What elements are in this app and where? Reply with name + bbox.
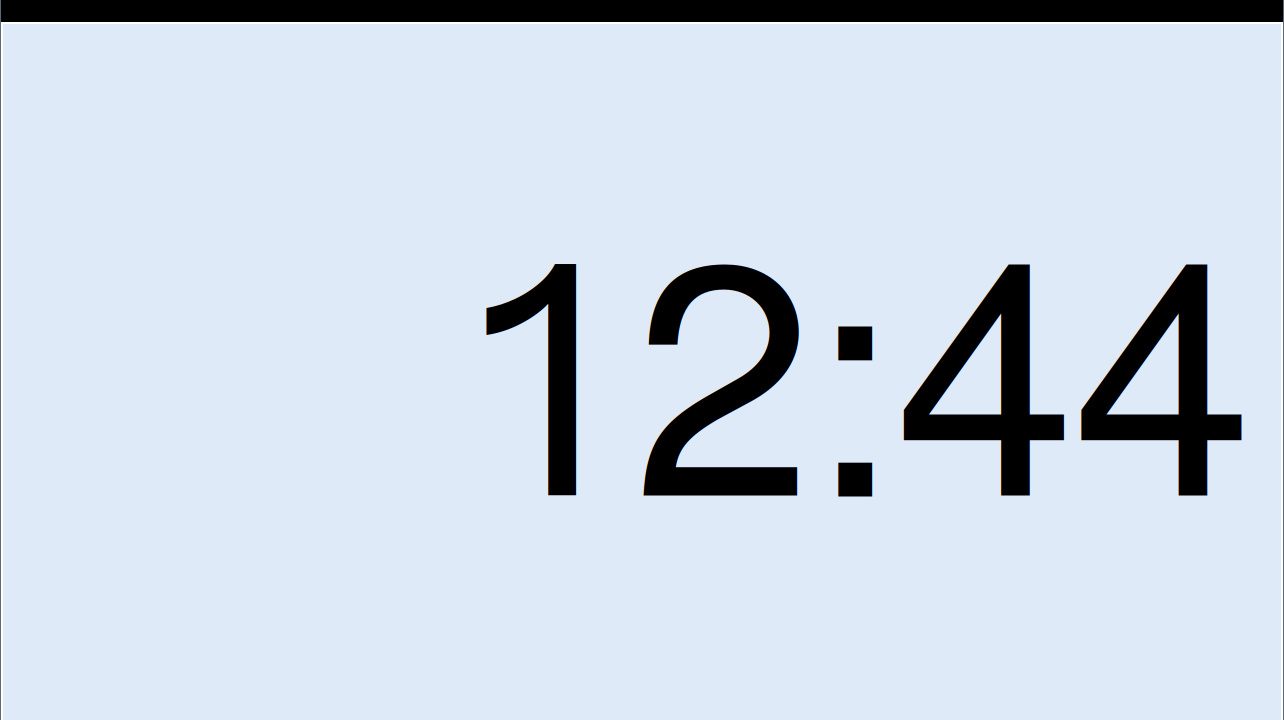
staticText: 1 [477,185,602,575]
staticText: : [810,123,900,589]
staticText: 2 [632,122,813,588]
staticText: 44 [895,122,1253,588]
button[interactable]: 12:44 [0,0,1284,720]
